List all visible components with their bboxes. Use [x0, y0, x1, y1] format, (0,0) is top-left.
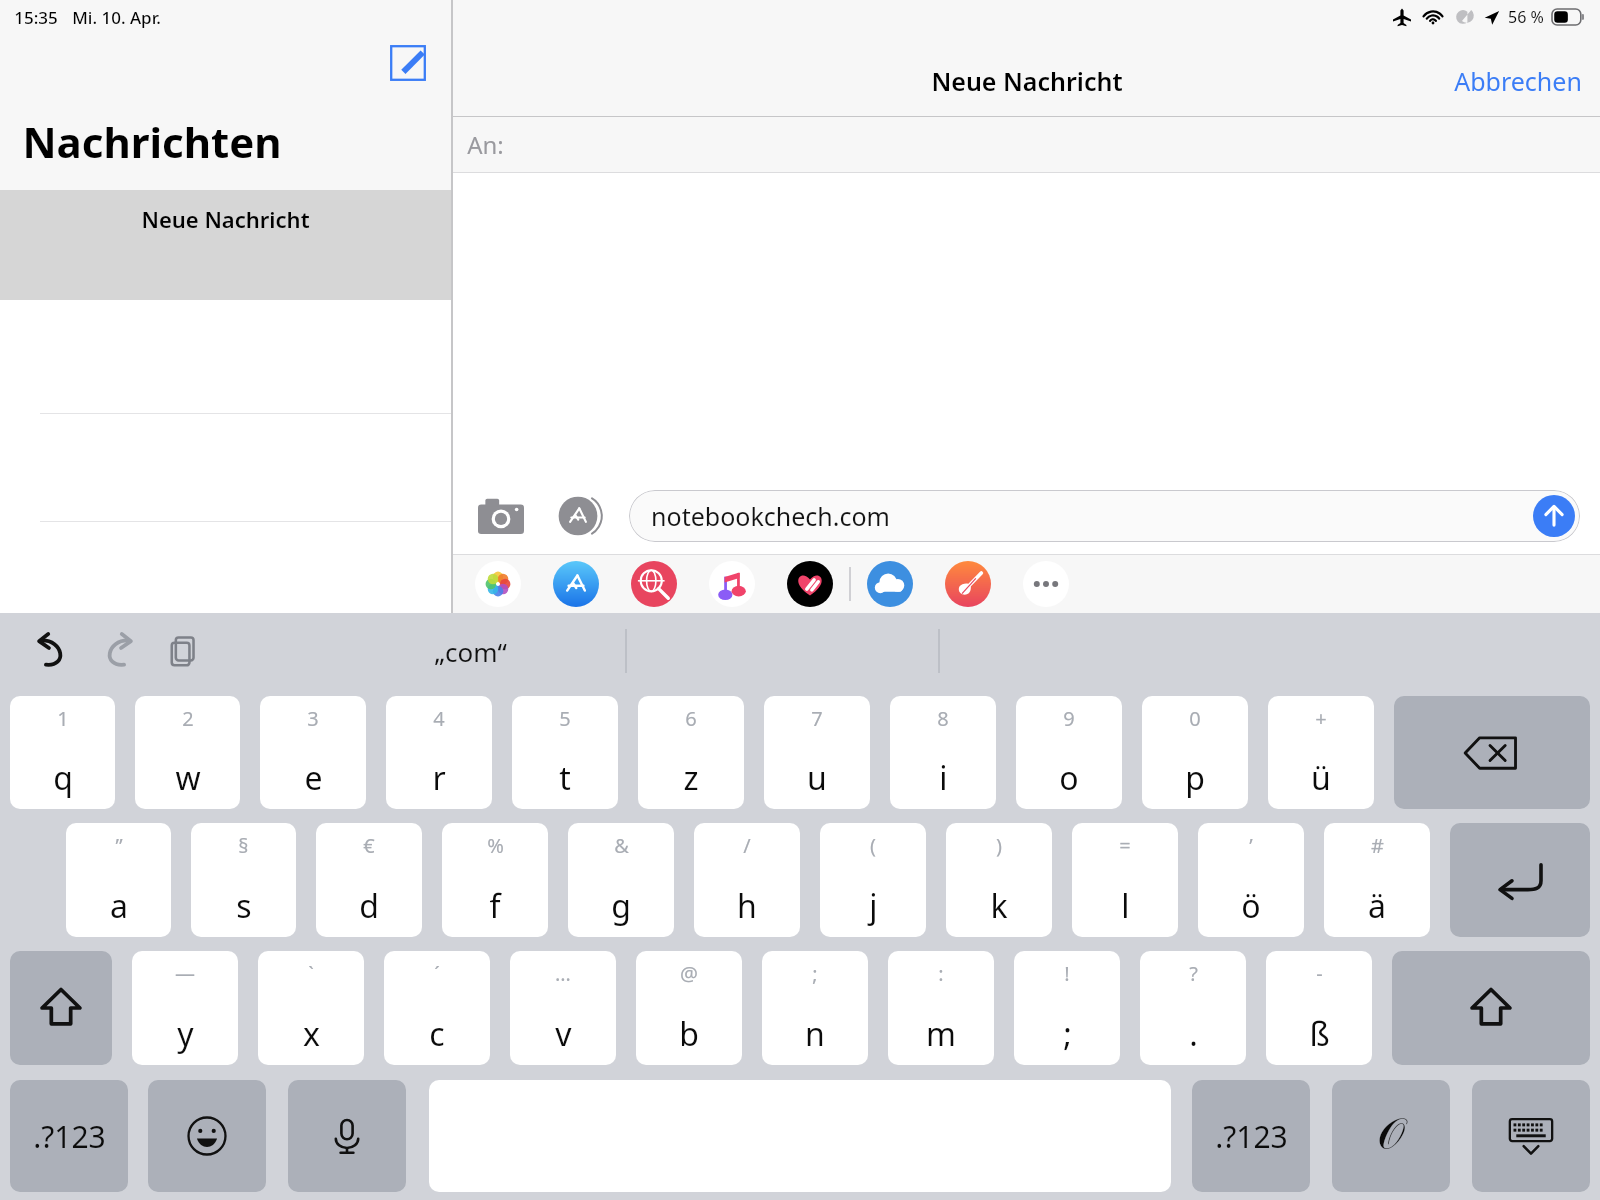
button[interactable]: Neue Nachricht	[0, 190, 451, 300]
button[interactable]: ”	[66, 823, 171, 937]
staticText: p	[1185, 756, 1205, 800]
button[interactable]: 2	[135, 696, 240, 809]
button[interactable]: 7	[764, 696, 870, 809]
button[interactable]: Fotos	[475, 561, 521, 607]
staticText: c	[429, 1012, 445, 1056]
button[interactable]: Widerrufen	[28, 627, 76, 675]
button[interactable]: …	[510, 951, 616, 1065]
staticText: &	[614, 832, 629, 859]
staticText: Neue Nachricht	[931, 64, 1123, 98]
staticText: /	[743, 832, 751, 859]
button[interactable]: Tastatur ausblenden	[1472, 1080, 1590, 1192]
button[interactable]: €	[316, 823, 422, 937]
button[interactable]: Emoji	[148, 1080, 266, 1192]
staticText: €	[363, 832, 375, 859]
button[interactable]: §	[191, 823, 296, 937]
staticText: v	[555, 1012, 572, 1056]
staticText: (	[870, 832, 876, 859]
staticText: notebookchech.com	[651, 499, 890, 533]
button[interactable]: ;	[762, 951, 868, 1065]
button[interactable]: ’	[1198, 823, 1304, 937]
button[interactable]: Handschrift	[1332, 1080, 1450, 1192]
staticText: An:	[467, 128, 504, 161]
staticText: 6	[685, 705, 697, 732]
staticText: i	[939, 756, 948, 800]
staticText: o	[1059, 756, 1079, 800]
staticText: x	[303, 1012, 320, 1056]
button[interactable]: `	[258, 951, 364, 1065]
button[interactable]: (	[820, 823, 926, 937]
button[interactable]: )	[946, 823, 1052, 937]
button[interactable]: 6	[638, 696, 744, 809]
button[interactable]: ´	[384, 951, 490, 1065]
staticText: §	[238, 832, 249, 859]
button[interactable]: Mehr	[1023, 561, 1069, 607]
staticText: -	[1316, 960, 1323, 987]
staticText: g	[611, 884, 631, 928]
button[interactable]: Diktieren	[288, 1080, 406, 1192]
staticText: ;	[812, 960, 818, 987]
staticText: =	[1119, 832, 1131, 859]
staticText: w	[175, 756, 201, 800]
button[interactable]: Musik	[709, 561, 755, 607]
button[interactable]: 0	[1142, 696, 1248, 809]
button[interactable]: #	[1324, 823, 1430, 937]
button[interactable]: Senden	[1533, 495, 1575, 537]
button[interactable]: 3	[260, 696, 366, 809]
button[interactable]: ?	[1140, 951, 1246, 1065]
button[interactable]: GarageBand	[945, 561, 991, 607]
button[interactable]: App Store	[555, 493, 601, 539]
button[interactable]: Bildersuche	[631, 561, 677, 607]
button[interactable]: iCloud Drive	[867, 561, 913, 607]
button[interactable]: Eingabe	[1450, 823, 1590, 937]
button[interactable]: 1	[10, 696, 115, 809]
button[interactable]: :	[888, 951, 994, 1065]
button[interactable]: Digital Touch	[787, 561, 833, 607]
button[interactable]: 5	[512, 696, 618, 809]
staticText: Nachrichten	[22, 113, 282, 170]
staticText: 3	[307, 705, 319, 732]
staticText: ’	[1249, 832, 1253, 859]
button[interactable]: !	[1014, 951, 1120, 1065]
staticText: ü	[1311, 756, 1331, 800]
button[interactable]: =	[1072, 823, 1178, 937]
button[interactable]: &	[568, 823, 674, 937]
staticText: u	[807, 756, 827, 800]
button[interactable]: Umschalt	[1392, 951, 1590, 1065]
button[interactable]: Neue Nachricht verfassen	[387, 42, 429, 84]
staticText: Mi. 10. Apr.	[72, 6, 161, 29]
button[interactable]: Wiederholen	[94, 627, 142, 675]
button[interactable]: -	[1266, 951, 1372, 1065]
button[interactable]: 9	[1016, 696, 1122, 809]
staticText: m	[926, 1012, 956, 1056]
staticText: t	[559, 756, 571, 800]
button[interactable]: Löschen	[1394, 696, 1590, 809]
button[interactable]: .?123	[1192, 1080, 1310, 1192]
staticText: 56 %	[1508, 6, 1544, 28]
button[interactable]: App Store	[553, 561, 599, 607]
staticText: !	[1064, 960, 1070, 987]
staticText: .	[1189, 1012, 1198, 1056]
staticText: 𝒪	[1377, 1114, 1405, 1158]
button[interactable]: @	[636, 951, 742, 1065]
button[interactable]: 8	[890, 696, 996, 809]
staticText: ´	[434, 960, 440, 987]
button[interactable]: Einsetzen	[160, 627, 208, 675]
button[interactable]: %	[442, 823, 548, 937]
button[interactable]: Abbrechen	[1436, 56, 1600, 106]
staticText: 5	[559, 705, 571, 732]
button[interactable]: /	[694, 823, 800, 937]
button[interactable]: Kamera	[477, 492, 525, 540]
button[interactable]: An:	[453, 117, 1600, 172]
staticText: ä	[1368, 884, 1386, 928]
button[interactable]: .?123	[10, 1080, 128, 1192]
button[interactable]: notebookchech.com	[629, 490, 1580, 542]
button[interactable]: —	[132, 951, 238, 1065]
staticText: a	[110, 884, 128, 928]
button[interactable]: 4	[386, 696, 492, 809]
staticText: )	[996, 832, 1002, 859]
staticText: q	[53, 756, 73, 800]
button[interactable]: +	[1268, 696, 1374, 809]
button[interactable]: Umschalt	[10, 951, 112, 1065]
